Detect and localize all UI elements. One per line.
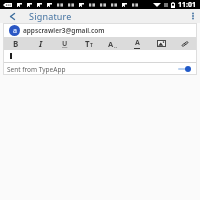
staticText: A — [135, 38, 140, 48]
button[interactable]: Back — [0, 9, 24, 23]
button[interactable]: a — [3, 23, 197, 37]
button[interactable]: Bold — [3, 37, 28, 50]
staticText: a — [13, 26, 17, 36]
staticText: 11:01 — [178, 0, 196, 9]
button[interactable]: Sent from TypeApp — [3, 63, 197, 75]
staticText: Sent from TypeApp — [7, 65, 66, 74]
staticText: T — [90, 42, 93, 49]
button[interactable]: Font — [101, 37, 125, 50]
staticText: U — [62, 39, 68, 49]
button[interactable]: Italic — [28, 37, 53, 50]
button[interactable]: Text color — [125, 37, 149, 50]
staticText: A — [108, 39, 114, 49]
staticText: B — [13, 38, 19, 49]
button[interactable]: Insert image — [149, 37, 173, 50]
button[interactable]: More options — [186, 9, 200, 23]
staticText: appscrawler3@gmail.com — [23, 26, 105, 35]
staticText: I — [39, 38, 43, 50]
button[interactable]: Underline — [53, 37, 77, 50]
staticText: Signature — [29, 10, 72, 22]
staticText: T — [85, 38, 90, 49]
staticText: .. — [114, 42, 118, 49]
button[interactable]: Insert link — [173, 37, 197, 50]
button[interactable]: Text size — [77, 37, 101, 50]
